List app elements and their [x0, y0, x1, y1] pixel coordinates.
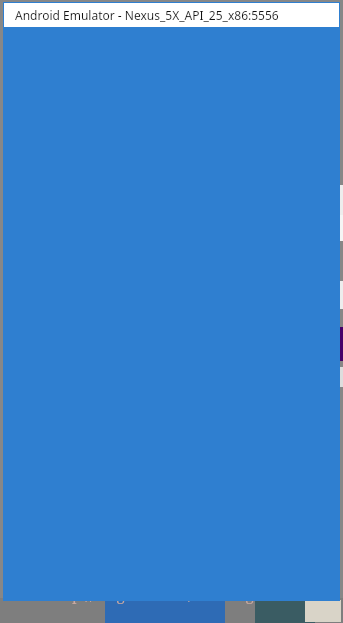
staticText: http://blog.csdn.net/nbabcdg — [52, 584, 254, 604]
staticText: Android Emulator - Nexus_5X_API_25_x86:5… — [15, 7, 279, 23]
